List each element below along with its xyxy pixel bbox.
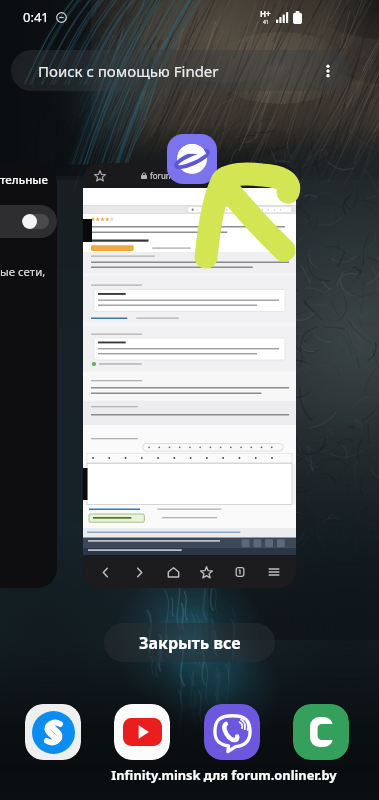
button[interactable]: forum.onliner.by	[83, 163, 296, 588]
button[interactable]: Samsung Internet	[167, 134, 217, 184]
staticText: Закрыть все	[139, 632, 241, 654]
staticText: ые сети,	[0, 264, 46, 280]
button[interactable]: YouTube	[114, 704, 170, 760]
other: More options	[321, 64, 335, 78]
staticText: 0:41	[23, 8, 49, 26]
button[interactable]: Shazam	[25, 704, 81, 760]
staticText: тельные	[0, 172, 48, 188]
button[interactable]: Viber	[204, 704, 260, 760]
button[interactable]: Menu	[263, 561, 285, 583]
button[interactable]: Закрыть все	[104, 623, 275, 662]
button[interactable]: Back	[94, 561, 116, 583]
staticText: H+	[260, 8, 271, 19]
button[interactable]: Home	[162, 561, 184, 583]
staticText: 41	[263, 19, 269, 26]
button[interactable]: Phone	[293, 704, 349, 760]
staticText: Поиск с помощью Finder	[38, 61, 219, 81]
button[interactable]: тельные	[0, 163, 57, 588]
button[interactable]: Bookmarks	[195, 561, 217, 583]
button[interactable]: Tabs	[229, 561, 251, 583]
button[interactable]: Forward	[128, 561, 150, 583]
staticText: forum.onliner.by	[150, 170, 212, 181]
staticText: Infinity.minsk для forum.onliner.by	[111, 766, 337, 783]
button[interactable]: Поиск с помощью Finder	[11, 50, 349, 91]
